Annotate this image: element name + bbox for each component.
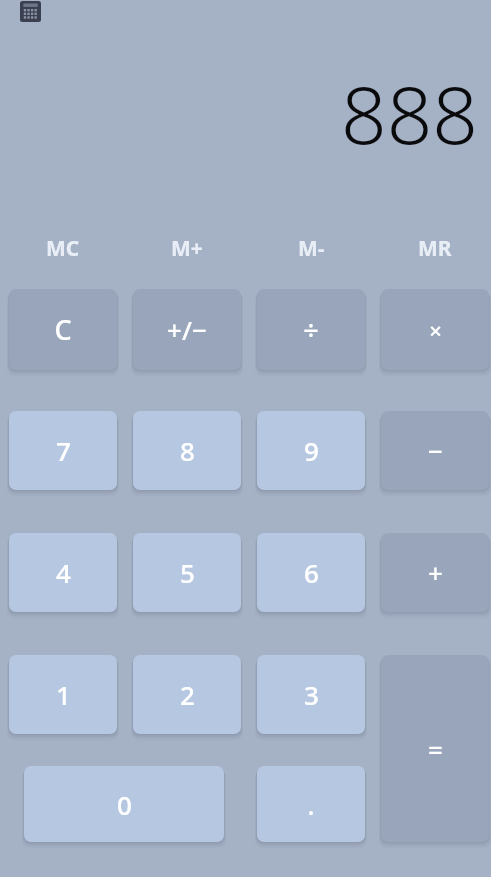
staticText: =	[428, 731, 443, 766]
button[interactable]: MC	[9, 230, 117, 266]
button[interactable]: 5	[133, 533, 241, 612]
staticText: 1	[56, 677, 71, 712]
staticText: .	[307, 787, 315, 822]
staticText: 4	[56, 555, 71, 590]
button[interactable]: 6	[257, 533, 365, 612]
staticText: M-	[298, 234, 325, 263]
button[interactable]: =	[381, 655, 489, 842]
staticText: ÷	[303, 311, 319, 348]
button[interactable]: Calculator	[20, 1, 41, 22]
staticText: C	[54, 311, 72, 348]
button[interactable]: 1	[9, 655, 117, 734]
staticText: ×	[429, 315, 442, 345]
button[interactable]: 9	[257, 411, 365, 490]
button[interactable]: 0	[24, 766, 224, 842]
button[interactable]: 7	[9, 411, 117, 490]
staticText: 3	[304, 677, 319, 712]
button[interactable]: ×	[381, 289, 489, 370]
staticText: MR	[418, 234, 452, 263]
staticText: 9	[304, 433, 319, 468]
button[interactable]: +	[381, 533, 489, 612]
button[interactable]: .	[257, 766, 365, 842]
button[interactable]: 3	[257, 655, 365, 734]
button[interactable]: −	[381, 411, 489, 490]
staticText: 8	[180, 433, 195, 468]
staticText: M+	[171, 234, 203, 263]
button[interactable]: M+	[133, 230, 241, 266]
staticText: +	[428, 555, 443, 590]
button[interactable]: ÷	[257, 289, 365, 370]
button[interactable]: 8	[133, 411, 241, 490]
button[interactable]: +/−	[133, 289, 241, 370]
button[interactable]: MR	[381, 230, 489, 266]
staticText: MC	[46, 234, 80, 263]
button[interactable]: 4	[9, 533, 117, 612]
staticText: 888	[340, 58, 478, 167]
button[interactable]: 2	[133, 655, 241, 734]
staticText: +/−	[167, 312, 207, 347]
staticText: 2	[180, 677, 195, 712]
button[interactable]: C	[9, 289, 117, 370]
button[interactable]: M-	[257, 230, 365, 266]
staticText: −	[428, 433, 443, 468]
staticText: 0	[117, 787, 132, 822]
staticText: 6	[304, 555, 319, 590]
staticText: 5	[180, 555, 195, 590]
staticText: 7	[56, 433, 71, 468]
